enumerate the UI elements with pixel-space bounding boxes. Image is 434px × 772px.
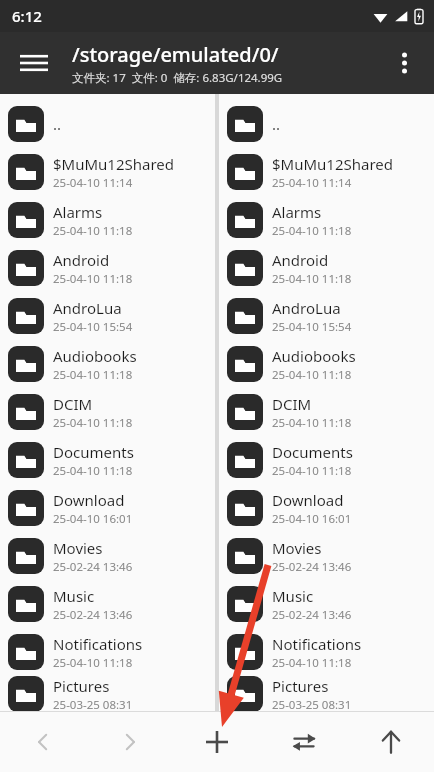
button[interactable]: Movies	[219, 532, 434, 580]
staticText: 25-04-10 11:18	[272, 463, 352, 479]
staticText: $MuMu12Shared	[53, 154, 174, 174]
staticText: Download	[53, 490, 125, 510]
staticText: Android	[53, 250, 110, 270]
staticText: 25-04-10 11:18	[53, 463, 133, 479]
staticText: 25-04-10 16:01	[53, 511, 133, 527]
staticText: Audiobooks	[53, 346, 137, 366]
button[interactable]: Music	[0, 580, 215, 628]
button[interactable]: Menu	[8, 37, 60, 89]
staticText: 文件夹: 17 文件: 0 储存: 6.83G/124.99G	[72, 70, 283, 86]
staticText: DCIM	[53, 394, 93, 414]
button[interactable]: Transfer	[260, 712, 347, 772]
button[interactable]: Movies	[0, 532, 215, 580]
staticText: Alarms	[53, 202, 103, 222]
staticText: 25-03-25 08:31	[53, 697, 133, 712]
staticText: 25-04-10 11:18	[272, 655, 352, 671]
staticText: 25-04-10 15:54	[53, 319, 133, 335]
staticText: Notifications	[272, 634, 362, 654]
button[interactable]: AndroLua	[219, 292, 434, 340]
staticText: $MuMu12Shared	[272, 154, 393, 174]
staticText: Documents	[53, 442, 134, 462]
button[interactable]: Audiobooks	[219, 340, 434, 388]
staticText: DCIM	[272, 394, 312, 414]
staticText: 25-04-10 11:18	[272, 367, 352, 383]
button[interactable]: Alarms	[219, 196, 434, 244]
staticText: Pictures	[53, 676, 110, 696]
staticText: 25-04-10 11:14	[53, 175, 133, 191]
staticText: 25-02-24 13:46	[272, 559, 352, 575]
button[interactable]: Forward	[86, 712, 173, 772]
staticText: Alarms	[272, 202, 322, 222]
staticText: 25-04-10 11:14	[272, 175, 352, 191]
staticText: 25-04-10 11:18	[53, 655, 133, 671]
staticText: Audiobooks	[272, 346, 356, 366]
button[interactable]: $MuMu12Shared	[0, 148, 215, 196]
button[interactable]: ..	[219, 100, 434, 148]
staticText: 25-02-24 13:46	[272, 607, 352, 623]
staticText: Android	[272, 250, 329, 270]
staticText: Music	[53, 586, 95, 606]
staticText: Movies	[272, 538, 322, 558]
button[interactable]: Documents	[219, 436, 434, 484]
staticText: Pictures	[272, 676, 329, 696]
staticText: 25-04-10 15:54	[272, 319, 352, 335]
button[interactable]: Add	[173, 712, 260, 772]
staticText: AndroLua	[53, 298, 122, 318]
button[interactable]: Music	[219, 580, 434, 628]
staticText: 25-04-10 11:18	[272, 415, 352, 431]
button[interactable]: DCIM	[0, 388, 215, 436]
staticText: 25-04-10 11:18	[53, 415, 133, 431]
staticText: 25-04-10 11:18	[272, 271, 352, 287]
staticText: Music	[272, 586, 314, 606]
staticText: Documents	[272, 442, 353, 462]
staticText: 25-04-10 11:18	[53, 223, 133, 239]
staticText: 25-03-25 08:31	[272, 697, 352, 712]
staticText: 25-04-10 11:18	[53, 367, 133, 383]
staticText: 25-04-10 16:01	[272, 511, 352, 527]
staticText: 25-04-10 11:18	[53, 271, 133, 287]
button[interactable]: Pictures	[219, 676, 434, 712]
button[interactable]: Notifications	[0, 628, 215, 676]
button[interactable]: Up	[347, 712, 434, 772]
button[interactable]: Notifications	[219, 628, 434, 676]
staticText: 25-02-24 13:46	[53, 607, 133, 623]
button[interactable]: $MuMu12Shared	[219, 148, 434, 196]
staticText: /storage/emulated/0/	[72, 41, 279, 68]
staticText: ..	[53, 114, 62, 134]
staticText: Movies	[53, 538, 103, 558]
button[interactable]: ..	[0, 100, 215, 148]
staticText: Download	[272, 490, 344, 510]
staticText: ..	[272, 114, 281, 134]
button[interactable]: DCIM	[219, 388, 434, 436]
button[interactable]: Download	[219, 484, 434, 532]
button[interactable]: Audiobooks	[0, 340, 215, 388]
staticText: 25-04-10 11:18	[272, 223, 352, 239]
button[interactable]: Back	[0, 712, 86, 772]
button[interactable]: Pictures	[0, 676, 215, 712]
button[interactable]: AndroLua	[0, 292, 215, 340]
button[interactable]: Download	[0, 484, 215, 532]
button[interactable]: Android	[0, 244, 215, 292]
staticText: 25-02-24 13:46	[53, 559, 133, 575]
button[interactable]: Alarms	[0, 196, 215, 244]
button[interactable]: Documents	[0, 436, 215, 484]
staticText: Notifications	[53, 634, 143, 654]
button[interactable]: More options	[380, 39, 428, 87]
button[interactable]: Android	[219, 244, 434, 292]
staticText: 6:12	[12, 6, 42, 26]
staticText: AndroLua	[272, 298, 341, 318]
